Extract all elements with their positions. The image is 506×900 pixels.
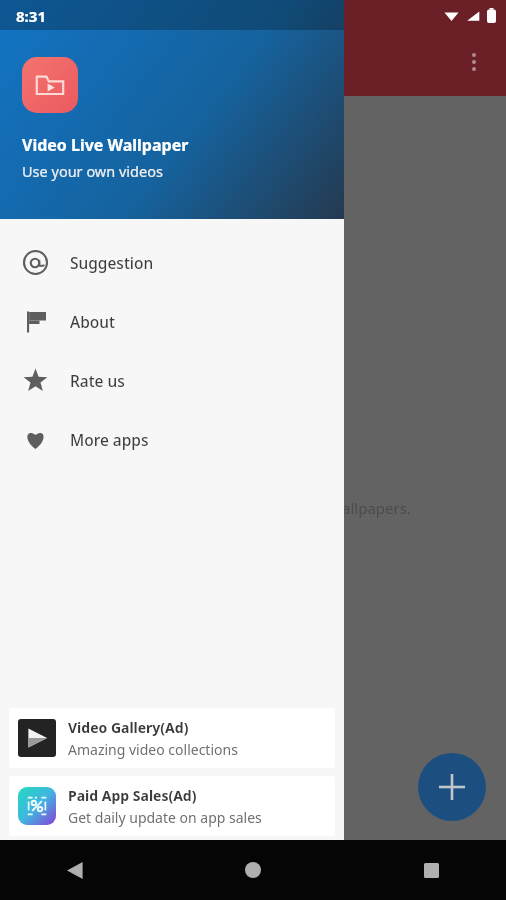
staticText: About xyxy=(70,311,115,332)
button[interactable]: Recent apps xyxy=(408,847,454,893)
button[interactable]: Add xyxy=(418,753,486,821)
staticText: Use your own videos xyxy=(22,161,163,181)
button[interactable]: Video Gallery(Ad) xyxy=(9,708,335,768)
staticText: More apps xyxy=(70,429,149,450)
staticText: Paid App Sales(Ad) xyxy=(68,786,197,805)
staticText: allpapers. xyxy=(342,498,411,518)
staticText: Get daily update on app sales xyxy=(68,808,262,827)
staticText: 8:31 xyxy=(16,6,46,26)
button[interactable]: Rate us xyxy=(0,351,344,410)
button[interactable]: Suggestion xyxy=(0,233,344,292)
staticText: Amazing video collections xyxy=(68,740,238,759)
button[interactable]: More apps xyxy=(0,410,344,469)
button[interactable]: About xyxy=(0,292,344,351)
staticText: Video Live Wallpaper xyxy=(22,134,189,156)
button[interactable]: Home xyxy=(230,847,276,893)
staticText: Rate us xyxy=(70,370,125,391)
staticText: Video Gallery(Ad) xyxy=(68,718,189,737)
button[interactable]: Paid App Sales(Ad) xyxy=(9,776,335,836)
staticText: Suggestion xyxy=(70,252,154,273)
button[interactable]: Back xyxy=(52,847,98,893)
button[interactable]: More options xyxy=(452,40,496,84)
